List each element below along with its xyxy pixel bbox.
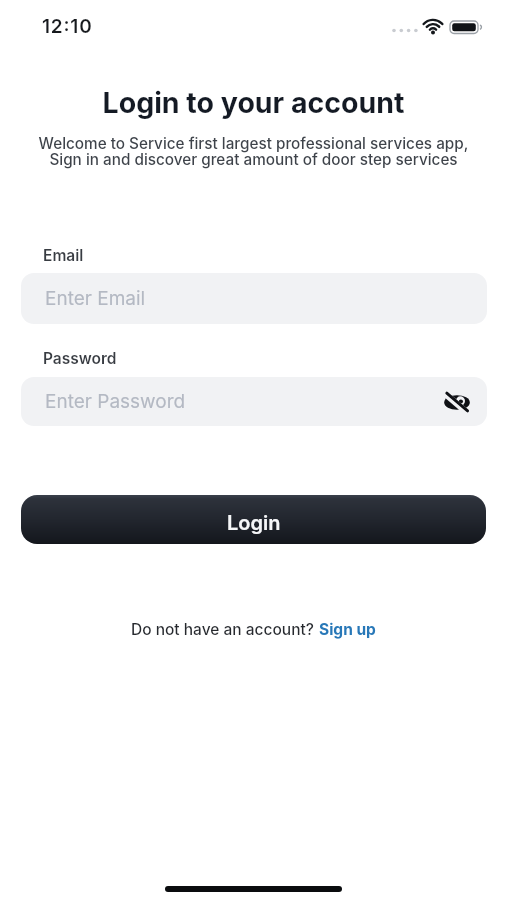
staticText: Enter Email [45, 287, 146, 310]
button[interactable]: Enter Email [21, 273, 487, 324]
staticText: Login [227, 511, 281, 535]
staticText: Password [43, 349, 117, 368]
button[interactable] [444, 389, 470, 415]
staticText: 12:10 [42, 15, 93, 38]
button[interactable]: Sign up [319, 620, 376, 639]
button[interactable]: Login [21, 495, 486, 544]
staticText: Sign up [319, 620, 376, 639]
staticText: Email [43, 246, 84, 265]
staticText: Login to your account [0, 85, 507, 119]
staticText: Welcome to Service first largest profess… [0, 134, 507, 169]
staticText: Enter Password [45, 390, 186, 413]
staticText: Do not have an account? [131, 620, 319, 639]
button[interactable]: Enter Password [21, 377, 487, 426]
